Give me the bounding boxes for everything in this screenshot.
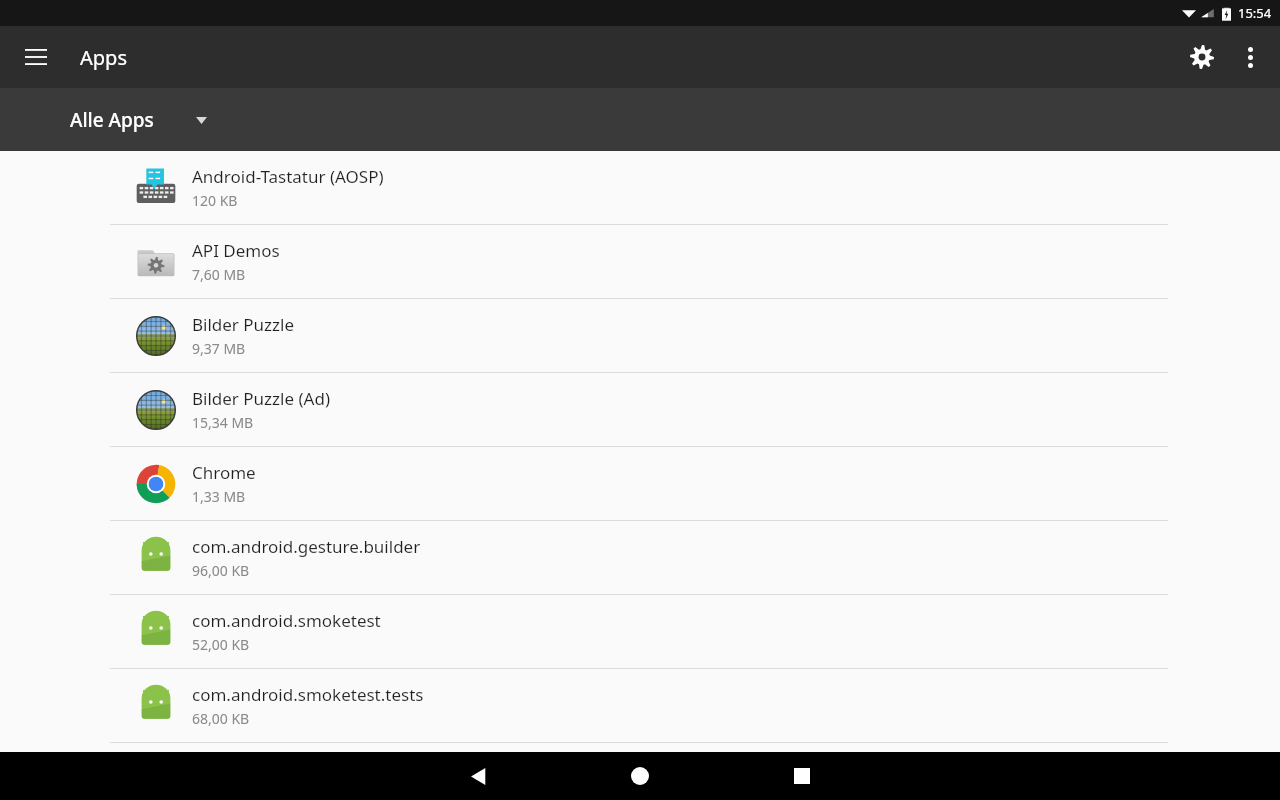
staticText: 68,00 KB: [192, 709, 250, 728]
button[interactable]: Open navigation drawer: [14, 35, 58, 79]
staticText: Android-Tastatur (AOSP): [192, 165, 384, 188]
staticText: com.android.gesture.builder: [192, 535, 421, 558]
button[interactable]: Bilder Puzzle: [0, 299, 1280, 372]
button[interactable]: Chrome: [0, 447, 1280, 520]
button[interactable]: Android-Tastatur (AOSP): [0, 151, 1280, 224]
staticText: 7,60 MB: [192, 265, 246, 284]
button[interactable]: com.android.gesture.builder: [0, 521, 1280, 594]
staticText: Bilder Puzzle: [192, 313, 295, 336]
button[interactable]: Home: [616, 752, 664, 800]
button[interactable]: Alle Apps: [56, 97, 221, 143]
staticText: 1,33 MB: [192, 487, 246, 506]
staticText: com.android.smoketest.tests: [192, 683, 424, 706]
button[interactable]: com.android.smoketest: [0, 595, 1280, 668]
staticText: 120 KB: [192, 191, 238, 210]
staticText: 15:54: [1238, 4, 1272, 22]
button[interactable]: Settings: [1176, 31, 1228, 83]
staticText: com.android.smoketest: [192, 609, 381, 632]
button[interactable]: Recent apps: [778, 752, 826, 800]
staticText: 9,37 MB: [192, 339, 246, 358]
staticText: 52,00 KB: [192, 635, 250, 654]
staticText: Apps: [80, 44, 127, 71]
staticText: 96,00 KB: [192, 561, 250, 580]
button[interactable]: Back: [454, 752, 502, 800]
button[interactable]: More options: [1228, 35, 1272, 79]
staticText: Chrome: [192, 461, 256, 484]
staticText: Alle Apps: [70, 107, 154, 133]
staticText: API Demos: [192, 239, 280, 262]
button[interactable]: com.android.smoketest.tests: [0, 669, 1280, 742]
staticText: Bilder Puzzle (Ad): [192, 387, 330, 410]
button[interactable]: API Demos: [0, 225, 1280, 298]
button[interactable]: Bilder Puzzle (Ad): [0, 373, 1280, 446]
staticText: 15,34 MB: [192, 413, 254, 432]
